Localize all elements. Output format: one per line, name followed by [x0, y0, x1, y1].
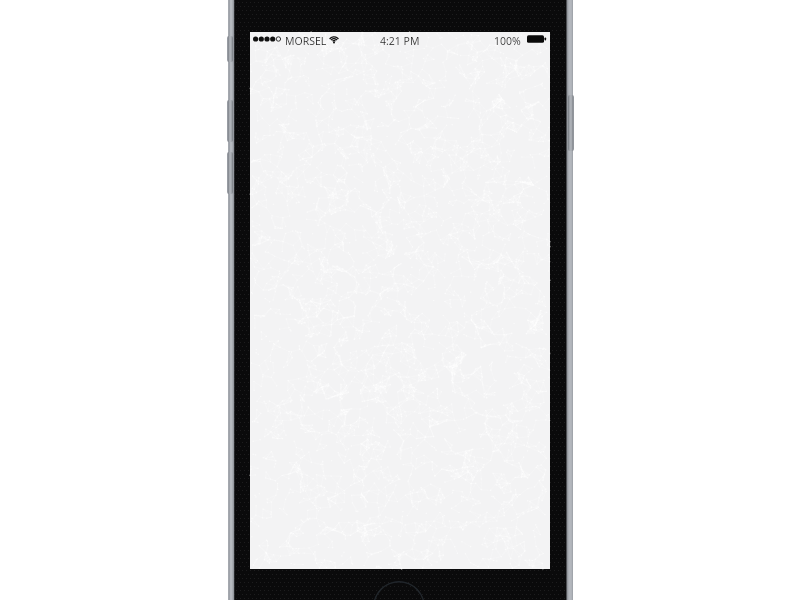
button[interactable]: Home — [373, 581, 425, 600]
button[interactable]: App screen — [250, 32, 550, 569]
staticText: MORSEL — [285, 34, 327, 48]
button[interactable]: Volume down — [227, 152, 233, 194]
staticText: 100% — [494, 34, 521, 48]
button[interactable]: Power — [568, 95, 574, 151]
staticText: 4:21 PM — [380, 34, 420, 48]
button[interactable]: Silent switch — [227, 36, 233, 62]
button[interactable]: Volume up — [227, 100, 233, 142]
